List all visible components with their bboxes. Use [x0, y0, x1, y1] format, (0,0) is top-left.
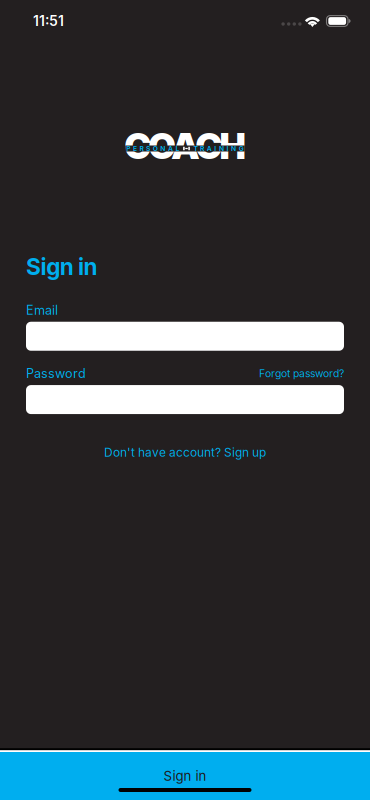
staticText: Forgot password? [259, 367, 344, 380]
button[interactable]: Sign in [0, 752, 370, 800]
staticText: Password [26, 366, 86, 381]
staticText: Don't have account? Sign up [104, 445, 266, 460]
staticText: COACH [124, 124, 245, 168]
staticText: Sign in [26, 253, 98, 280]
staticText: 11:51 [33, 12, 64, 29]
staticText: Sign in [163, 768, 206, 784]
button[interactable]: Forgot password? [259, 367, 344, 380]
staticText: PERSONAL [126, 144, 179, 153]
staticText: TRAINING [193, 144, 244, 153]
staticText: Email [26, 302, 58, 318]
button[interactable]: Don't have account? Sign up [26, 445, 344, 460]
